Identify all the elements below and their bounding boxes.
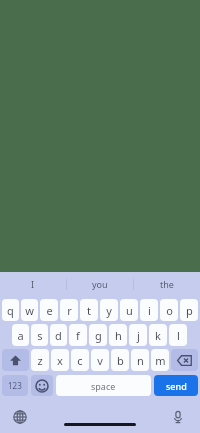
button[interactable]: c <box>71 349 89 371</box>
button[interactable]: i <box>140 299 158 321</box>
staticText: a <box>17 328 24 343</box>
staticText: c <box>77 353 83 368</box>
button[interactable]: Emoji <box>31 375 53 396</box>
staticText: k <box>155 328 161 343</box>
button[interactable]: space <box>56 375 151 396</box>
button[interactable]: t <box>80 299 98 321</box>
staticText: g <box>95 328 102 343</box>
staticText: n <box>137 353 144 368</box>
button[interactable]: j <box>129 324 147 346</box>
button[interactable]: Backspace <box>171 349 198 371</box>
staticText: e <box>46 303 53 318</box>
button[interactable]: v <box>91 349 109 371</box>
button[interactable]: Shift <box>2 349 29 371</box>
button[interactable]: Voice input <box>168 407 188 427</box>
button[interactable]: f <box>69 324 87 346</box>
button[interactable]: e <box>40 299 58 321</box>
staticText: you <box>92 278 108 290</box>
button[interactable]: p <box>180 299 198 321</box>
button[interactable]: r <box>60 299 78 321</box>
staticText: h <box>115 328 122 343</box>
staticText: q <box>7 303 14 318</box>
staticText: x <box>57 353 63 368</box>
staticText: v <box>97 353 103 368</box>
staticText: I <box>31 278 35 290</box>
button[interactable]: b <box>111 349 129 371</box>
staticText: l <box>177 328 180 343</box>
staticText: t <box>87 303 91 318</box>
staticText: d <box>55 328 62 343</box>
staticText: s <box>37 328 43 343</box>
button[interactable]: I <box>0 272 66 296</box>
button[interactable]: send <box>154 375 198 396</box>
button[interactable]: w <box>21 299 38 321</box>
staticText: f <box>76 328 80 343</box>
button[interactable]: a <box>12 324 29 346</box>
staticText: u <box>126 303 133 318</box>
staticText: j <box>137 328 140 343</box>
staticText: 123 <box>8 380 22 391</box>
staticText: w <box>25 303 34 318</box>
staticText: space <box>91 380 116 392</box>
button[interactable]: d <box>50 324 67 346</box>
staticText: r <box>67 303 72 318</box>
button[interactable]: n <box>131 349 149 371</box>
button[interactable]: y <box>100 299 118 321</box>
button[interactable]: g <box>89 324 107 346</box>
button[interactable]: k <box>149 324 167 346</box>
staticText: the <box>160 278 174 290</box>
staticText: o <box>166 303 173 318</box>
button[interactable]: 123 <box>2 375 28 396</box>
staticText: y <box>106 303 112 318</box>
button[interactable]: Change keyboard language <box>10 407 30 427</box>
button[interactable]: z <box>31 349 49 371</box>
staticText: send <box>166 380 187 392</box>
button[interactable]: l <box>169 324 187 346</box>
button[interactable]: u <box>120 299 138 321</box>
button[interactable]: x <box>51 349 69 371</box>
staticText: z <box>37 353 43 368</box>
button[interactable]: q <box>2 299 19 321</box>
staticText: b <box>117 353 124 368</box>
button[interactable]: s <box>31 324 48 346</box>
button[interactable]: o <box>160 299 178 321</box>
button[interactable]: you <box>67 272 133 296</box>
staticText: p <box>186 303 193 318</box>
button[interactable]: h <box>109 324 127 346</box>
button[interactable]: m <box>151 349 169 371</box>
staticText: m <box>155 353 166 368</box>
button[interactable]: the <box>134 272 200 296</box>
staticText: i <box>148 303 151 318</box>
